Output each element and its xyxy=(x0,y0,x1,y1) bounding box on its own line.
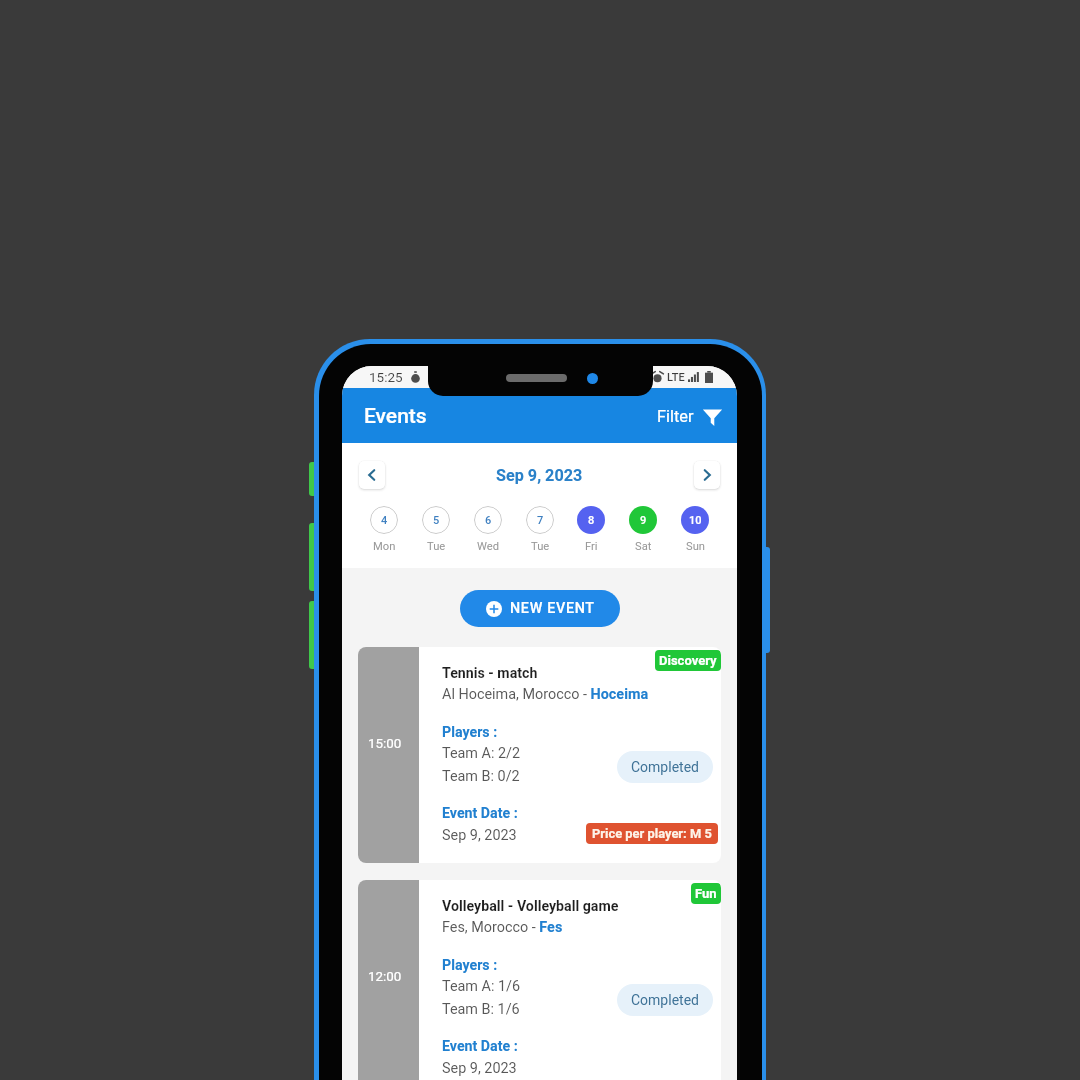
button[interactable]: NEW EVENT xyxy=(460,590,620,627)
staticText: Wed xyxy=(477,540,499,553)
staticText: Sep 9, 2023 xyxy=(442,1060,517,1077)
staticText: Tennis - match xyxy=(442,665,538,682)
button[interactable]: 15:00 xyxy=(358,647,721,863)
staticText: Players : xyxy=(442,957,498,974)
staticText: Filter xyxy=(657,407,694,426)
staticText: 10 xyxy=(689,514,702,527)
button[interactable]: 4 xyxy=(370,506,398,553)
staticText: Volleyball - Volleyball game xyxy=(442,898,619,915)
button[interactable]: 5 xyxy=(422,506,450,553)
staticText: Tue xyxy=(427,540,446,553)
staticText: Sep 9, 2023 xyxy=(496,466,583,485)
staticText: 15:25 xyxy=(369,369,403,385)
staticText: Sun xyxy=(686,540,705,553)
staticText: Events xyxy=(364,404,427,429)
staticText: Event Date : xyxy=(442,1038,518,1055)
staticText: 5 xyxy=(433,514,440,527)
button[interactable]: 6 xyxy=(474,506,502,553)
button[interactable]: 9 xyxy=(629,506,657,553)
staticText: Players : xyxy=(442,724,498,741)
staticText: Team B: 0/2 xyxy=(442,768,520,785)
staticText: 7 xyxy=(537,514,544,527)
staticText: LTE xyxy=(667,371,685,384)
staticText: Event Date : xyxy=(442,805,518,822)
staticText: Team B: 1/6 xyxy=(442,1001,520,1018)
staticText: Fun xyxy=(695,886,717,901)
staticText: NEW EVENT xyxy=(510,600,595,617)
staticText: Sep 9, 2023 xyxy=(442,827,517,844)
staticText: Mon xyxy=(373,540,396,553)
button[interactable]: 8 xyxy=(577,506,605,553)
staticText: 4 xyxy=(381,514,388,527)
button[interactable]: 7 xyxy=(526,506,554,553)
staticText: Price per player: M 5 xyxy=(592,826,712,841)
staticText: 9 xyxy=(640,514,647,527)
staticText: Team A: 1/6 xyxy=(442,978,521,995)
staticText: Fes, Morocco - Fes xyxy=(442,919,563,936)
button[interactable]: Next day xyxy=(694,461,720,489)
staticText: 6 xyxy=(485,514,492,527)
staticText: Completed xyxy=(631,759,699,775)
staticText: Completed xyxy=(631,992,699,1008)
staticText: 12:00 xyxy=(368,969,402,985)
staticText: Tue xyxy=(531,540,550,553)
button[interactable]: 10 xyxy=(681,506,709,553)
button[interactable]: Filter xyxy=(653,397,727,434)
staticText: Team A: 2/2 xyxy=(442,745,521,762)
staticText: Sat xyxy=(635,540,652,553)
staticText: 15:00 xyxy=(368,736,402,752)
button[interactable]: Completed xyxy=(617,751,713,783)
staticText: Fri xyxy=(585,540,598,553)
staticText: 8 xyxy=(588,514,595,527)
button[interactable]: Previous day xyxy=(359,461,385,489)
button[interactable]: 12:00 xyxy=(358,880,721,1080)
other: Filter xyxy=(702,406,723,427)
button[interactable]: Completed xyxy=(617,984,713,1016)
staticText: Discovery xyxy=(659,653,717,668)
staticText: Al Hoceima, Morocco - Hoceima xyxy=(442,686,649,703)
